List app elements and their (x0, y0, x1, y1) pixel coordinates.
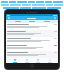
button[interactable] (10, 4, 21, 6)
button[interactable]: Home (30, 64, 34, 68)
button[interactable] (6, 37, 58, 44)
button[interactable] (1, 4, 9, 6)
button[interactable]: Search (54, 17, 56, 19)
button[interactable] (22, 4, 31, 6)
button[interactable] (46, 4, 53, 6)
button[interactable] (9, 1, 16, 3)
button[interactable]: Starred (23, 58, 30, 63)
button[interactable] (36, 1, 44, 3)
button[interactable] (28, 1, 35, 3)
button[interactable] (6, 20, 58, 23)
button[interactable] (6, 44, 58, 51)
button[interactable] (47, 7, 61, 9)
button[interactable] (53, 1, 63, 3)
button[interactable]: Menu (6, 16, 58, 20)
button[interactable] (45, 1, 52, 3)
button[interactable]: Inbox (11, 58, 18, 63)
button[interactable]: More (46, 58, 53, 63)
button[interactable] (6, 23, 58, 30)
button[interactable] (20, 7, 31, 9)
button[interactable] (17, 1, 27, 3)
button[interactable] (3, 7, 19, 9)
button[interactable] (54, 4, 63, 6)
button[interactable] (32, 4, 45, 6)
button[interactable] (32, 7, 46, 9)
button[interactable]: Sent (34, 58, 41, 63)
button[interactable] (6, 30, 58, 37)
button[interactable] (6, 51, 58, 58)
button[interactable] (1, 1, 8, 3)
